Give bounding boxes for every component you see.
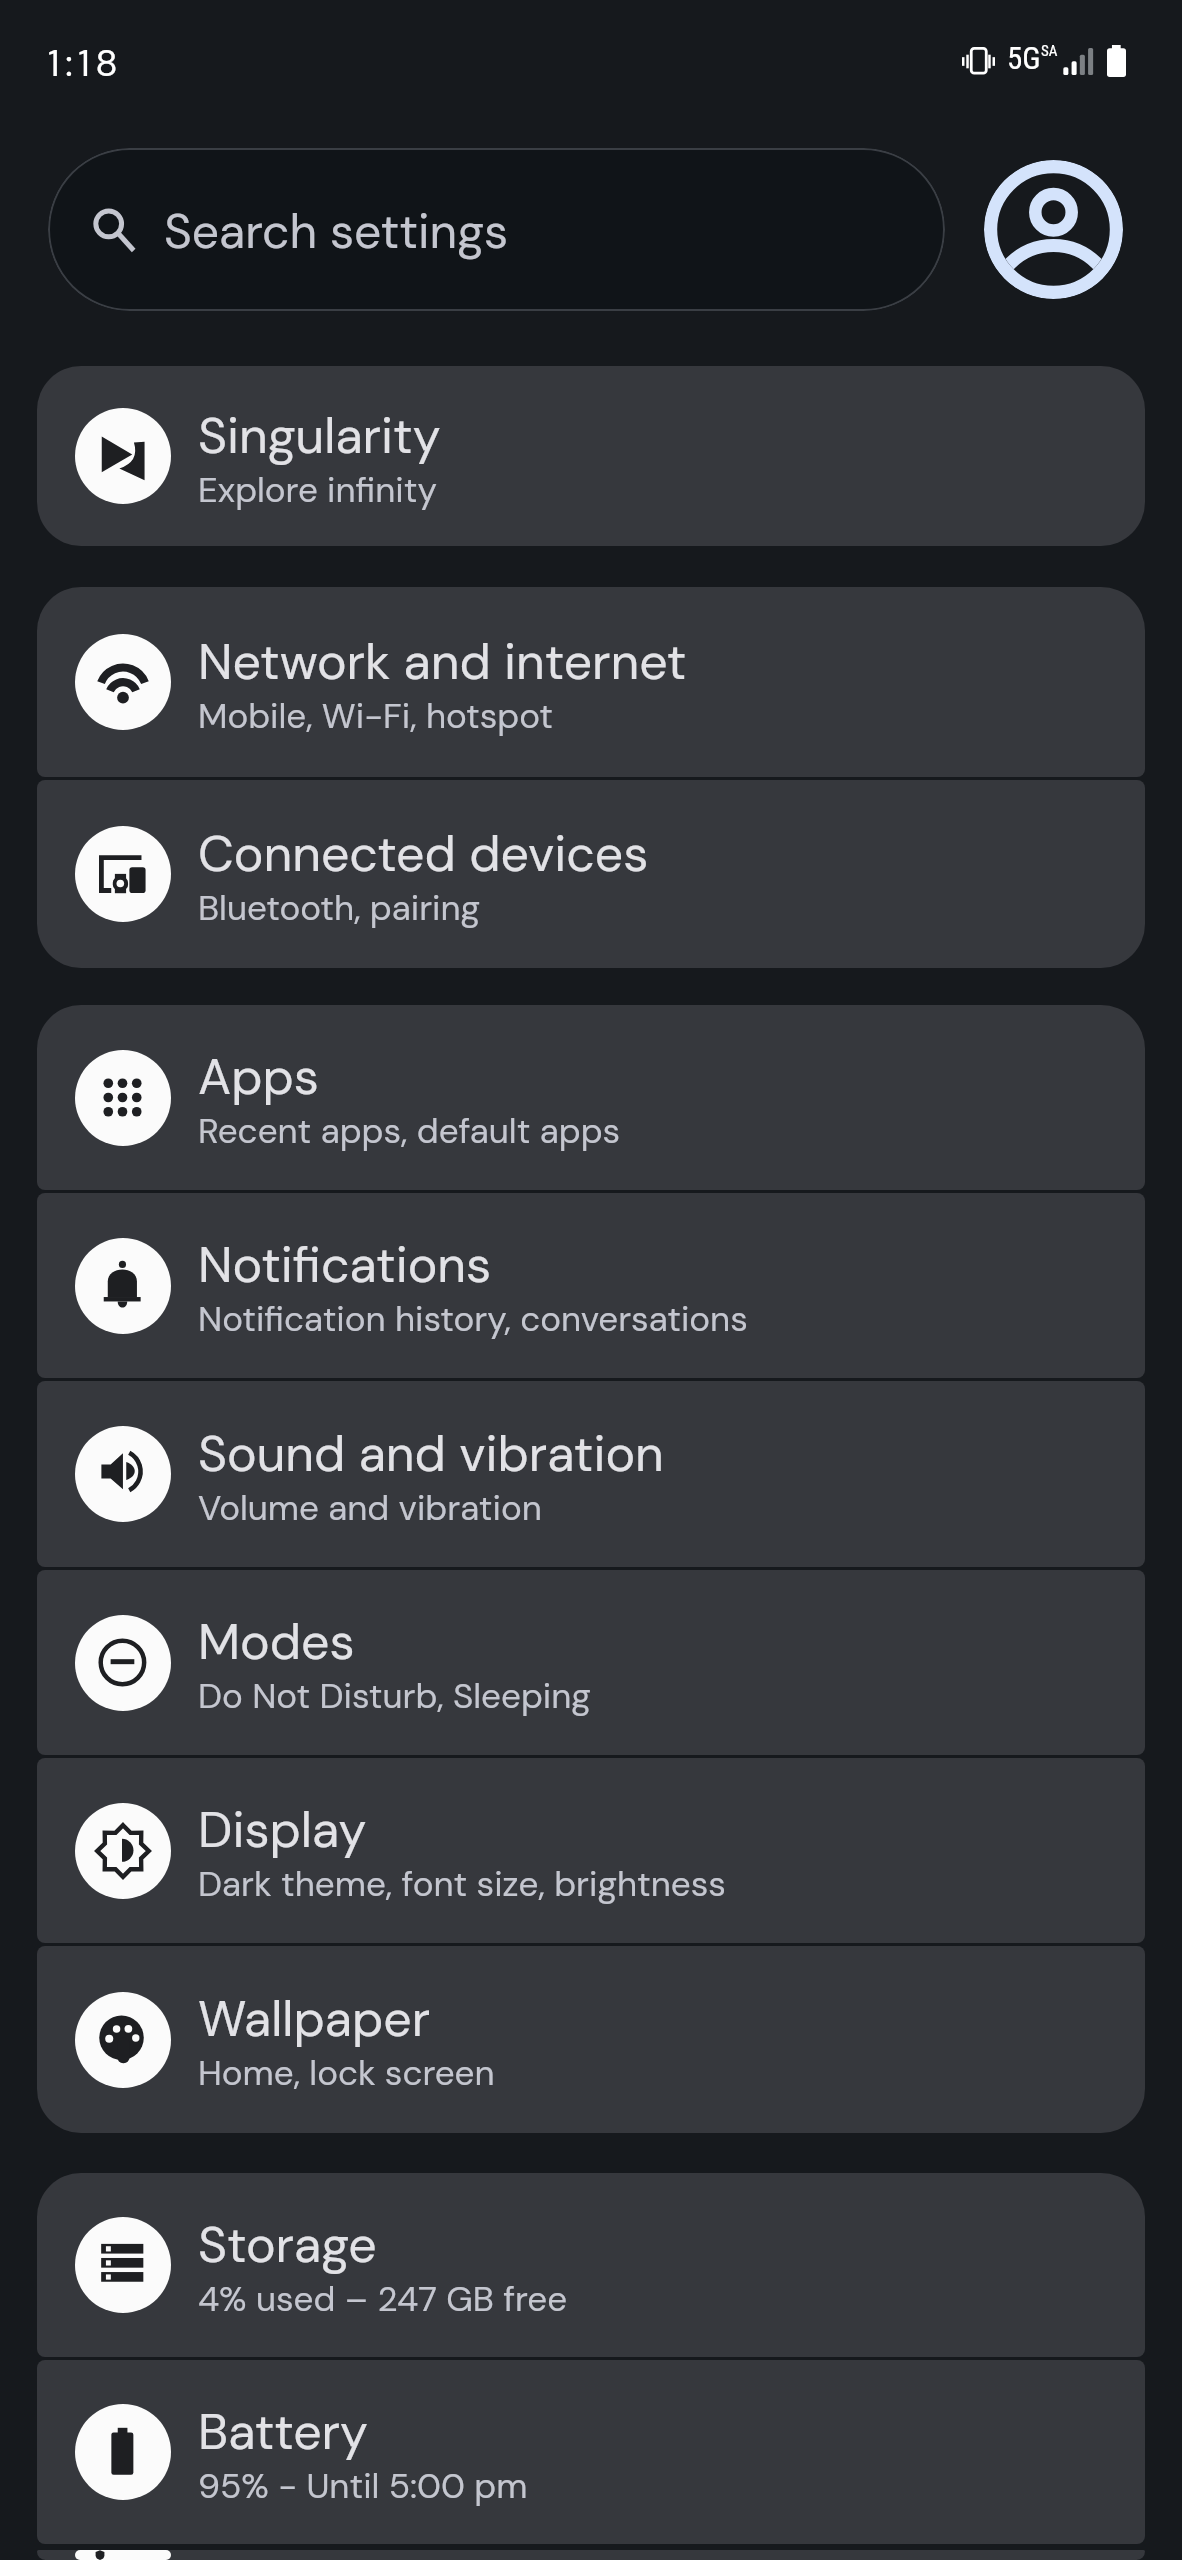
button[interactable]: Apps — [37, 1005, 1145, 1190]
staticText: Bluetooth, pairing — [198, 885, 481, 931]
staticText: 1:18 — [48, 39, 124, 87]
other: Battery — [1107, 45, 1126, 77]
button[interactable]: Account — [984, 160, 1123, 299]
staticText: Network and internet — [198, 629, 687, 694]
staticText: Mobile, Wi-Fi, hotspot — [198, 693, 554, 739]
button[interactable]: Notifications — [37, 1193, 1145, 1378]
staticText: 4% used – 247 GB free — [198, 2276, 568, 2322]
staticText: Storage — [198, 2212, 377, 2277]
button[interactable]: Sound and vibration — [37, 1381, 1145, 1567]
staticText: Do Not Disturb, Sleeping — [198, 1673, 591, 1719]
button[interactable]: Modes — [37, 1570, 1145, 1755]
staticText: Modes — [198, 1609, 355, 1674]
staticText: Apps — [198, 1044, 319, 1109]
staticText: Display — [198, 1797, 367, 1862]
other: Vibrate mode — [962, 46, 995, 77]
button[interactable]: Singularity — [37, 366, 1145, 546]
button[interactable]: Wallpaper — [37, 1946, 1145, 2133]
staticText: Recent apps, default apps — [198, 1108, 621, 1154]
staticText: Home, lock screen — [198, 2050, 495, 2096]
staticText: Battery — [198, 2399, 368, 2464]
button[interactable]: Storage — [37, 2173, 1145, 2357]
staticText: Notification history, conversations — [198, 1296, 748, 1342]
staticText: Sound and vibration — [198, 1421, 664, 1486]
staticText: Dark theme, font size, brightness — [198, 1861, 726, 1907]
staticText: SA — [1041, 42, 1058, 60]
staticText: Search settings — [164, 200, 509, 262]
staticText: 5G — [1007, 40, 1041, 76]
button[interactable]: Connected devices — [37, 780, 1145, 968]
staticText: 95% - Until 5:00 pm — [198, 2463, 528, 2509]
button[interactable]: Battery — [37, 2360, 1145, 2544]
button[interactable]: Network and internet — [37, 587, 1145, 777]
button[interactable]: Display — [37, 1758, 1145, 1943]
staticText: Volume and vibration — [198, 1485, 542, 1531]
staticText: Wallpaper — [198, 1986, 431, 2051]
staticText: Notifications — [198, 1232, 492, 1297]
other: Signal strength — [1063, 48, 1095, 75]
staticText: Connected devices — [198, 821, 649, 886]
staticText: Singularity — [198, 403, 441, 468]
button[interactable]: Security and privacy — [37, 2550, 1145, 2560]
button[interactable]: Search settings — [48, 148, 945, 311]
staticText: Explore infinity — [198, 467, 437, 513]
